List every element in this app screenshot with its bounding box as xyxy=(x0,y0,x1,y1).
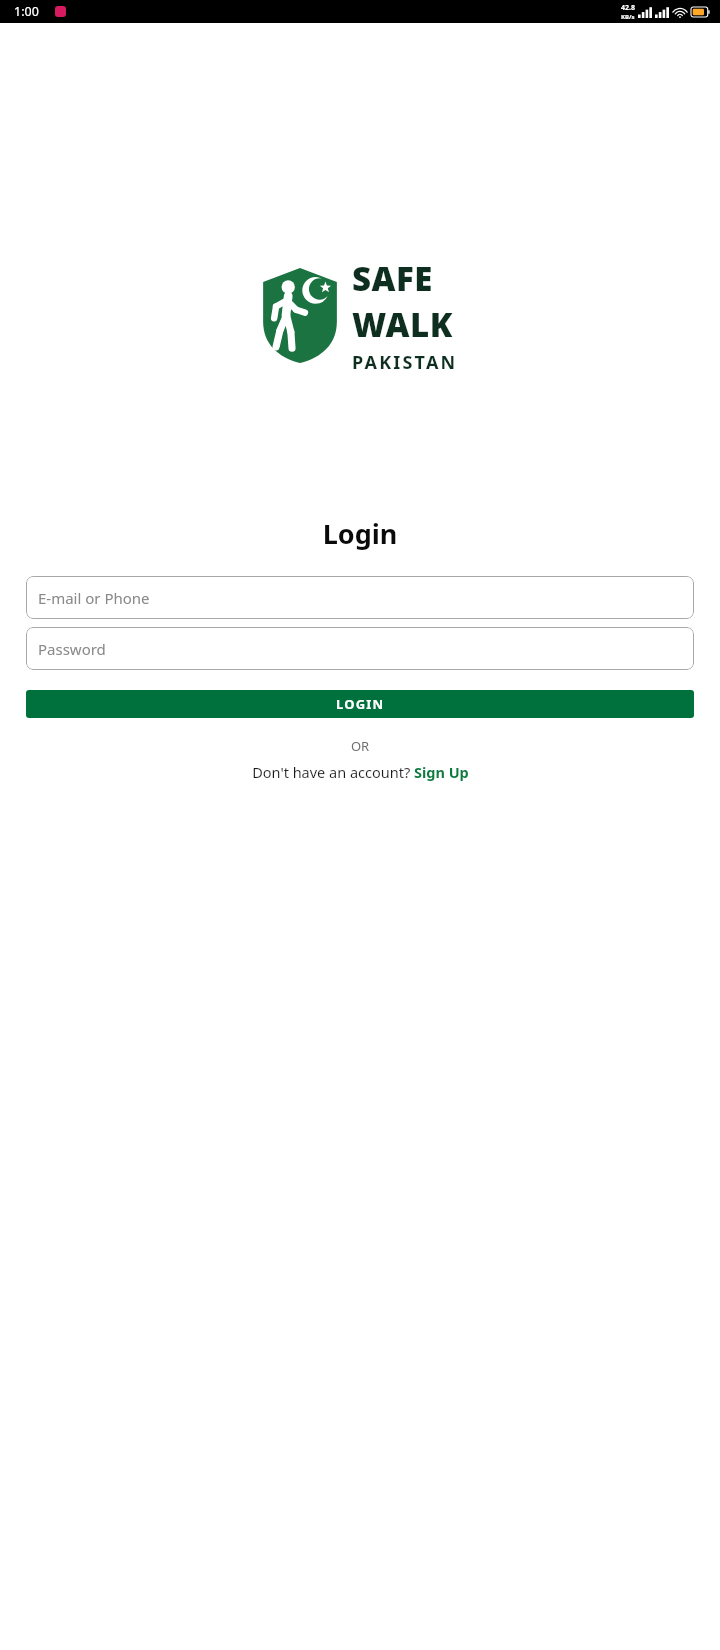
staticText: LOGIN xyxy=(336,695,385,713)
staticText: Don't have an account? Sign Up xyxy=(252,762,469,782)
staticText: 42.8 xyxy=(621,3,635,13)
staticText: E-mail or Phone xyxy=(38,588,150,608)
button[interactable]: Password xyxy=(26,627,694,670)
button[interactable]: Don't have an account? Sign Up xyxy=(252,762,469,782)
staticText: Login xyxy=(0,515,720,552)
staticText: WALK xyxy=(352,302,453,347)
button[interactable]: E-mail or Phone xyxy=(26,576,694,619)
staticText: Password xyxy=(38,639,106,659)
staticText: OR xyxy=(0,737,720,755)
staticText: SAFE xyxy=(352,256,433,301)
staticText: 1:00 xyxy=(14,3,39,20)
button[interactable]: LOGIN xyxy=(26,690,694,718)
staticText: PAKISTAN xyxy=(352,350,458,375)
staticText: KB/s xyxy=(621,13,635,21)
